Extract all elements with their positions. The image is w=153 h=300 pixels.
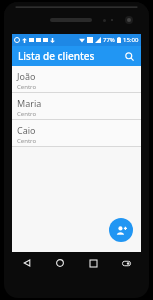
button[interactable]: Add client bbox=[109, 218, 133, 242]
staticText: 15:00 bbox=[123, 36, 139, 44]
staticText: 77% bbox=[103, 36, 115, 44]
button[interactable]: Back bbox=[20, 256, 34, 270]
staticText: João bbox=[17, 70, 36, 82]
button[interactable]: João bbox=[12, 66, 141, 93]
button[interactable]: Maria bbox=[12, 93, 141, 120]
staticText: Maria bbox=[17, 97, 42, 109]
button[interactable]: Home bbox=[53, 256, 67, 270]
button[interactable]: Recent apps bbox=[86, 256, 100, 270]
button[interactable]: Screenshot bbox=[119, 256, 133, 270]
staticText: Caio bbox=[17, 124, 36, 136]
staticText: Centro bbox=[17, 137, 37, 145]
staticText: Centro bbox=[17, 83, 37, 91]
button[interactable]: Search bbox=[121, 48, 137, 64]
staticText: Lista de clientes bbox=[18, 49, 95, 63]
button[interactable]: Caio bbox=[12, 120, 141, 147]
staticText: Centro bbox=[17, 110, 37, 118]
